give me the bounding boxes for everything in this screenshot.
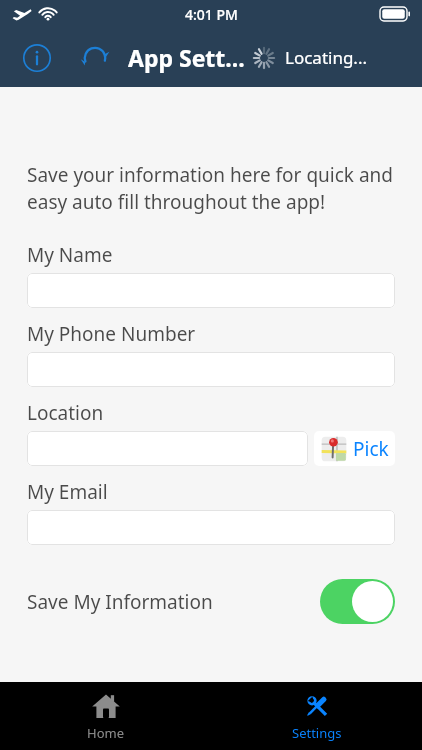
button[interactable]: Home — [0, 682, 211, 750]
staticText: My Phone Number — [27, 321, 422, 347]
staticText: Settings — [292, 724, 342, 742]
button[interactable]: Pick — [314, 431, 395, 466]
button[interactable] — [27, 273, 395, 308]
button[interactable] — [27, 352, 395, 387]
button[interactable] — [27, 510, 395, 545]
staticText: 4:01 PM — [185, 5, 238, 24]
button[interactable] — [27, 431, 308, 466]
staticText: Location — [27, 400, 422, 426]
staticText: Home — [87, 724, 124, 742]
staticText: Locating... — [285, 46, 368, 69]
button[interactable]: Settings — [211, 682, 422, 750]
button[interactable]: Info — [20, 41, 54, 75]
button[interactable]: Refresh — [78, 41, 112, 75]
staticText: My Name — [27, 242, 422, 268]
button[interactable]: Save My Information — [27, 579, 395, 624]
staticText: Save My Information — [27, 589, 213, 615]
button[interactable]: Save My Information toggle — [320, 579, 395, 624]
staticText: Save your information here for quick and… — [27, 162, 398, 215]
staticText: My Email — [27, 479, 422, 505]
staticText: Pick — [353, 436, 389, 462]
staticText: App Sett... — [128, 42, 245, 73]
